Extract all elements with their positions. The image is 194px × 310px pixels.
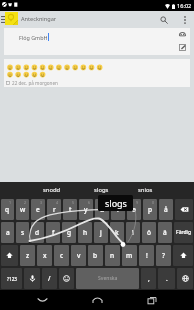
staticText: ?123 <box>7 276 17 282</box>
staticText: x <box>43 251 47 260</box>
button[interactable]: h <box>78 222 92 243</box>
staticText: t <box>69 205 72 214</box>
button[interactable]: y <box>79 199 93 220</box>
staticText: slogs <box>94 186 109 194</box>
staticText: ? <box>162 251 165 260</box>
button[interactable]: . <box>158 268 175 289</box>
staticText: e <box>36 205 40 214</box>
staticText: 8 <box>120 200 123 205</box>
staticText: . <box>166 274 168 283</box>
staticText: 5 <box>72 200 75 205</box>
button[interactable]: x <box>37 245 52 266</box>
staticText: v <box>77 251 81 260</box>
button[interactable]: Change keyboard <box>177 268 193 289</box>
button[interactable]: å <box>159 199 173 220</box>
button[interactable]: p <box>143 199 157 220</box>
button[interactable]: Change colour <box>175 28 189 42</box>
staticText: 2 <box>24 200 27 205</box>
button[interactable]: Svenska <box>76 268 139 289</box>
staticText: Svenska <box>98 275 118 282</box>
button[interactable]: j <box>94 222 108 243</box>
staticText: snios <box>138 186 153 194</box>
staticText: i <box>117 205 119 214</box>
button[interactable]: i <box>111 199 125 220</box>
button[interactable]: v <box>71 245 86 266</box>
staticText: r <box>53 205 56 214</box>
button[interactable]: ! <box>139 245 154 266</box>
staticText: f <box>52 228 55 237</box>
staticText: 22 dec. på morgonen <box>12 80 58 86</box>
button[interactable]: snios <box>121 182 169 198</box>
staticText: snodd <box>43 186 61 194</box>
button[interactable]: c <box>54 245 69 266</box>
staticText: 3 <box>40 200 43 205</box>
button[interactable]: d <box>31 222 44 243</box>
button[interactable]: Färdig <box>174 222 193 243</box>
button[interactable]: e <box>31 199 45 220</box>
button[interactable]: slogs <box>77 182 125 198</box>
staticText: p <box>148 205 153 214</box>
button[interactable]: More options <box>177 12 192 27</box>
staticText: k <box>115 228 119 237</box>
staticText: h <box>83 228 88 237</box>
button[interactable]: z <box>20 245 35 266</box>
button[interactable]: w <box>16 199 29 220</box>
button[interactable]: Voice input <box>24 268 40 289</box>
button[interactable]: , <box>141 268 156 289</box>
button[interactable]: u <box>95 199 109 220</box>
staticText: m <box>126 251 133 260</box>
staticText: Flög GmbH <box>19 34 48 41</box>
button[interactable]: k <box>110 222 124 243</box>
staticText: å <box>164 205 168 214</box>
staticText: a <box>6 228 10 237</box>
staticText: 6 <box>88 200 91 205</box>
staticText: b <box>93 251 98 260</box>
button[interactable]: a <box>1 222 14 243</box>
button[interactable]: ä <box>158 222 172 243</box>
button[interactable]: t <box>63 199 77 220</box>
button[interactable]: Back <box>29 290 55 310</box>
staticText: u <box>100 205 105 214</box>
button[interactable]: ö <box>142 222 156 243</box>
button[interactable]: f <box>46 222 60 243</box>
staticText: o <box>132 205 136 214</box>
button[interactable]: Recent apps <box>139 290 165 310</box>
staticText: j <box>100 228 102 237</box>
staticText: s <box>21 228 25 237</box>
staticText: ! <box>146 251 148 260</box>
button[interactable]: b <box>88 245 103 266</box>
button[interactable]: Keep <box>5 12 18 25</box>
button[interactable]: Home <box>84 290 110 310</box>
staticText: g <box>67 228 72 237</box>
button[interactable]: ?123 <box>1 268 22 289</box>
staticText: 4 <box>56 200 59 205</box>
staticText: l <box>132 228 134 237</box>
button[interactable]: r <box>47 199 61 220</box>
button[interactable]: Edit <box>175 40 189 54</box>
staticText: w <box>20 205 26 214</box>
staticText: 16:02 <box>177 2 192 10</box>
staticText: slogs <box>105 197 127 209</box>
button[interactable]: o <box>127 199 141 220</box>
button[interactable]: Shift <box>173 245 193 266</box>
button[interactable]: ? <box>156 245 171 266</box>
button[interactable]: s <box>16 222 29 243</box>
staticText: 0 <box>152 200 155 205</box>
button[interactable]: snodd <box>28 182 76 198</box>
button[interactable]: Backspace <box>175 199 193 220</box>
staticText: ä <box>163 228 167 237</box>
button[interactable]: Search <box>156 12 171 27</box>
button[interactable]: q <box>1 199 14 220</box>
button[interactable]: / <box>42 268 57 289</box>
button[interactable]: Navigation menu <box>0 13 6 26</box>
button[interactable]: n <box>105 245 120 266</box>
staticText: c <box>60 251 64 260</box>
button[interactable]: m <box>122 245 137 266</box>
button[interactable]: l <box>126 222 140 243</box>
staticText: y <box>84 205 88 214</box>
button[interactable]: Emoji <box>59 268 74 289</box>
button[interactable]: g <box>62 222 76 243</box>
staticText: q <box>5 205 10 214</box>
button[interactable]: Shift <box>1 245 18 266</box>
staticText: 9 <box>136 200 139 205</box>
